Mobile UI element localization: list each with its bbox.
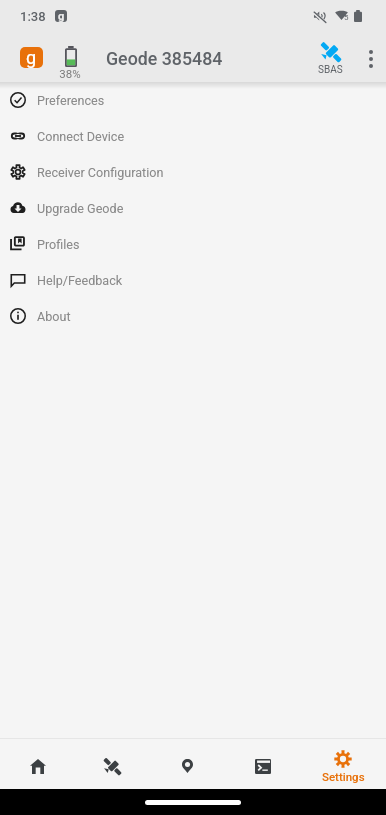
staticText: 5 (344, 13, 349, 22)
staticText: Geode 385484 (106, 48, 223, 69)
button[interactable]: Settings (300, 739, 386, 789)
button[interactable]: Satellites (75, 739, 150, 789)
button[interactable]: Receiver Configuration (0, 154, 386, 190)
staticText: Connect Device (37, 129, 125, 144)
staticText: Settings (322, 770, 365, 783)
staticText: Upgrade Geode (37, 201, 124, 216)
button[interactable]: Terminal (225, 739, 300, 789)
button[interactable]: Home (0, 739, 75, 789)
button[interactable]: Profiles (0, 226, 386, 262)
button[interactable]: Help/Feedback (0, 262, 386, 298)
staticText: g (58, 10, 65, 22)
button[interactable]: Preferences (0, 82, 386, 118)
staticText: Help/Feedback (37, 273, 123, 288)
button[interactable]: Connect Device (0, 118, 386, 154)
button[interactable]: SBAS satellite status (308, 41, 353, 76)
staticText: Preferences (37, 93, 105, 108)
button[interactable]: About (0, 298, 386, 334)
button[interactable]: More options (355, 36, 386, 82)
button[interactable]: Location (150, 739, 225, 789)
staticText: g (26, 47, 37, 68)
staticText: 1:38 (20, 9, 46, 24)
button[interactable]: Upgrade Geode (0, 190, 386, 226)
staticText: 38% (56, 67, 84, 80)
staticText: Profiles (37, 237, 80, 252)
staticText: About (37, 309, 71, 324)
staticText: Receiver Configuration (37, 165, 164, 180)
staticText: SBAS (318, 64, 343, 76)
